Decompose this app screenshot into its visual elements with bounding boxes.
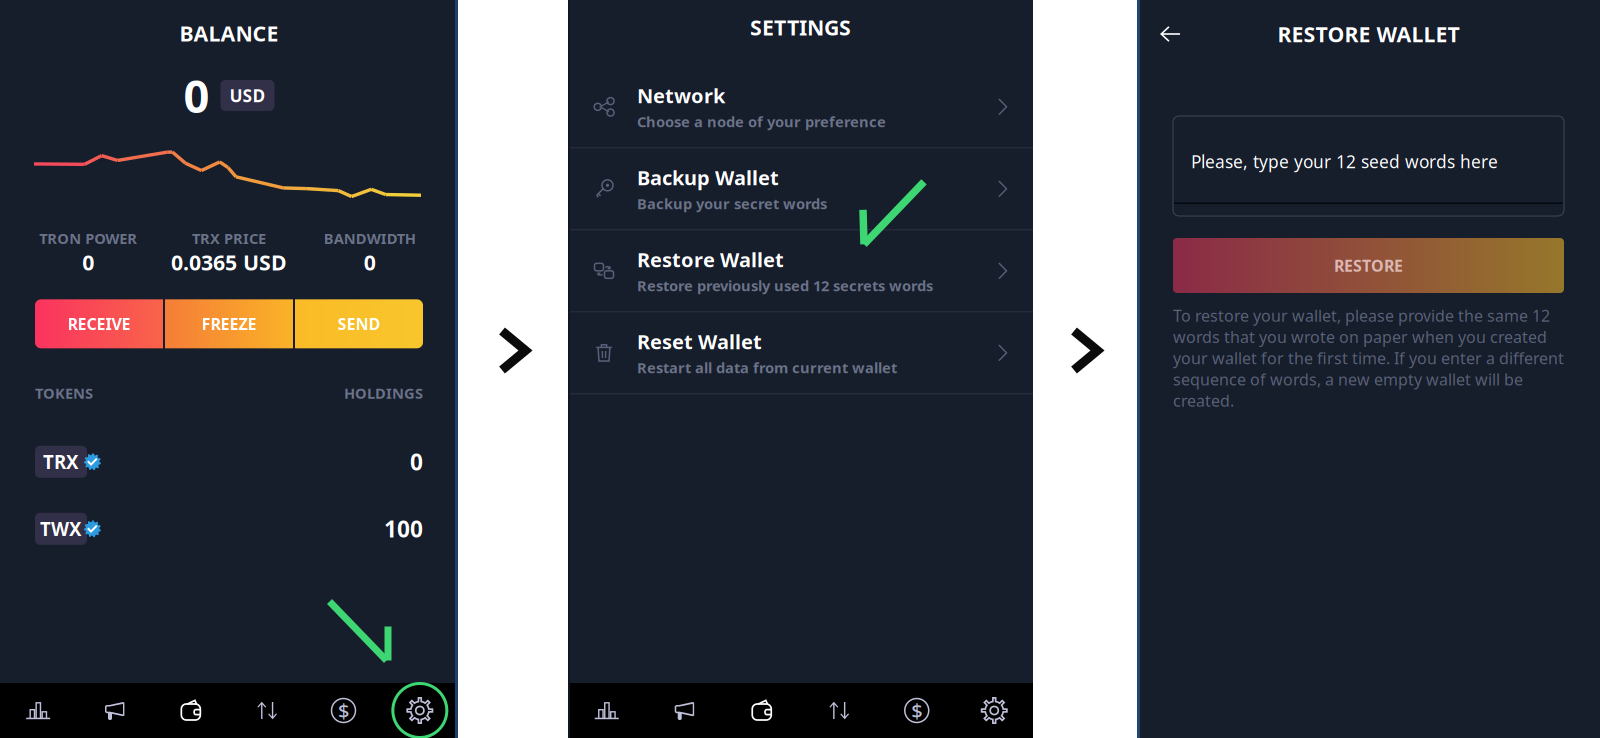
button[interactable]: RECEIVE <box>35 299 163 348</box>
button[interactable]: USD <box>220 80 274 111</box>
staticText: TOKENS <box>35 383 93 403</box>
button[interactable]: Wallet <box>153 683 229 738</box>
staticText: Please, type your 12 seed words here <box>1191 150 1498 173</box>
staticText: RESTORE <box>1334 255 1403 276</box>
staticText: $ <box>338 697 349 724</box>
button[interactable]: SEND <box>295 299 423 348</box>
button[interactable]: Transfers <box>800 683 878 738</box>
button[interactable]: FREEZE <box>165 299 293 348</box>
button[interactable]: Settings <box>955 683 1033 738</box>
staticText: Reset Wallet <box>637 328 762 355</box>
staticText: Choose a node of your preference <box>637 112 886 131</box>
button[interactable]: Statistics <box>0 683 76 738</box>
staticText: Backup Wallet <box>637 164 779 191</box>
button[interactable]: Reset Wallet <box>568 312 1033 394</box>
button[interactable]: Transfers <box>229 683 305 738</box>
staticText: TRX <box>43 449 79 474</box>
staticText: Restore previously used 12 secrets words <box>637 276 933 295</box>
staticText: 100 <box>384 514 423 544</box>
staticText: Restore Wallet <box>637 246 784 273</box>
staticText: Restart all data from current wallet <box>637 358 897 377</box>
staticText: TWX <box>40 516 82 541</box>
button[interactable]: News <box>645 683 723 738</box>
button[interactable]: Market <box>878 683 955 738</box>
staticText: 0 <box>364 248 376 276</box>
staticText: $ <box>911 697 922 724</box>
staticText: USD <box>229 84 265 107</box>
staticText: 0 <box>410 447 423 477</box>
button[interactable]: Wallet <box>723 683 800 738</box>
staticText: SETTINGS <box>750 13 851 41</box>
staticText: FREEZE <box>201 313 256 334</box>
staticText: TRON POWER <box>39 228 137 248</box>
staticText: BALANCE <box>179 19 278 47</box>
button[interactable]: Statistics <box>568 683 645 738</box>
staticText: 0 <box>82 248 94 276</box>
button[interactable]: Back <box>1153 17 1188 51</box>
button[interactable]: Network <box>568 66 1033 148</box>
button[interactable]: News <box>76 683 153 738</box>
staticText: TRX PRICE <box>192 228 266 248</box>
staticText: BANDWIDTH <box>324 228 416 248</box>
button[interactable]: Market <box>305 683 382 738</box>
staticText: 0.0365 USD <box>171 248 287 276</box>
button[interactable]: Backup Wallet <box>568 148 1033 230</box>
staticText: Backup your secret words <box>637 194 827 213</box>
button[interactable]: Restore Wallet <box>568 230 1033 312</box>
staticText: To restore your wallet, please provide t… <box>1173 305 1564 411</box>
button[interactable]: Settings <box>382 683 458 738</box>
button[interactable]: RESTORE <box>1173 238 1564 293</box>
staticText: Network <box>637 82 725 109</box>
staticText: RESTORE WALLET <box>1277 20 1459 48</box>
staticText: SEND <box>337 313 380 334</box>
staticText: 0 <box>183 65 209 125</box>
staticText: HOLDINGS <box>344 383 423 403</box>
staticText: RECEIVE <box>67 313 130 334</box>
